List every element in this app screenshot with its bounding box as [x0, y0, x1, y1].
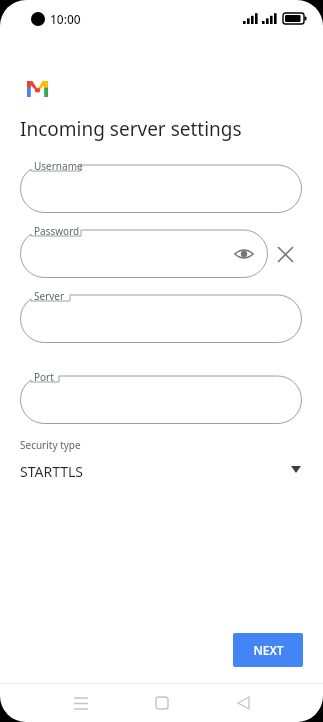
button[interactable]: Port	[20, 368, 302, 424]
button[interactable]: Server	[20, 287, 302, 343]
button[interactable]: Clear password	[268, 237, 302, 271]
button[interactable]: Home	[146, 687, 178, 719]
button[interactable]: Recent apps	[65, 687, 97, 719]
button[interactable]: Password	[20, 222, 268, 278]
staticText: Server	[34, 289, 65, 303]
button[interactable]: Security type	[0, 438, 323, 490]
button[interactable]: Username	[20, 157, 302, 213]
staticText: Incoming server settings	[20, 116, 242, 142]
staticText: 10:00	[50, 11, 81, 27]
staticText: NEXT	[253, 642, 284, 658]
staticText: STARTTLS	[20, 462, 84, 481]
staticText: Security type	[20, 438, 81, 452]
staticText: Password	[34, 224, 80, 238]
button[interactable]: Back	[227, 687, 259, 719]
button[interactable]: NEXT	[233, 633, 303, 667]
staticText: Port	[34, 370, 54, 384]
staticText: Username	[34, 159, 83, 173]
button[interactable]: Show password	[232, 242, 256, 266]
